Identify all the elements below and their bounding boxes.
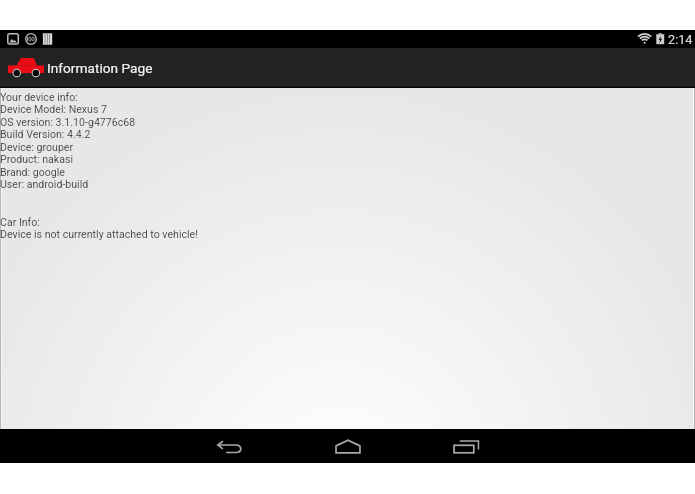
staticText: Build Version: 4.4.2 [0,128,91,140]
staticText: Brand: google [0,166,65,178]
staticText: User: android-build [0,178,89,190]
staticText: OS version: 3.1.10-g4776c68 [0,116,136,128]
staticText: Device Model: Nexus 7 [0,103,107,115]
button[interactable]: Back [195,429,265,463]
staticText: Car Info: [0,216,40,228]
button[interactable]: Notifications [7,32,55,46]
button[interactable]: Wi-Fi and battery status [638,31,668,47]
staticText: 2:14 [668,32,693,47]
button[interactable]: Recent apps [431,429,501,463]
staticText: Your device info: [0,91,78,103]
button[interactable]: Information Page [0,48,152,88]
staticText: Device: grouper [0,141,74,153]
button[interactable]: Home [313,429,383,463]
staticText: Device is not currently attached to vehi… [0,228,198,240]
staticText: Information Page [47,60,153,76]
staticText: Product: nakasi [0,153,74,165]
